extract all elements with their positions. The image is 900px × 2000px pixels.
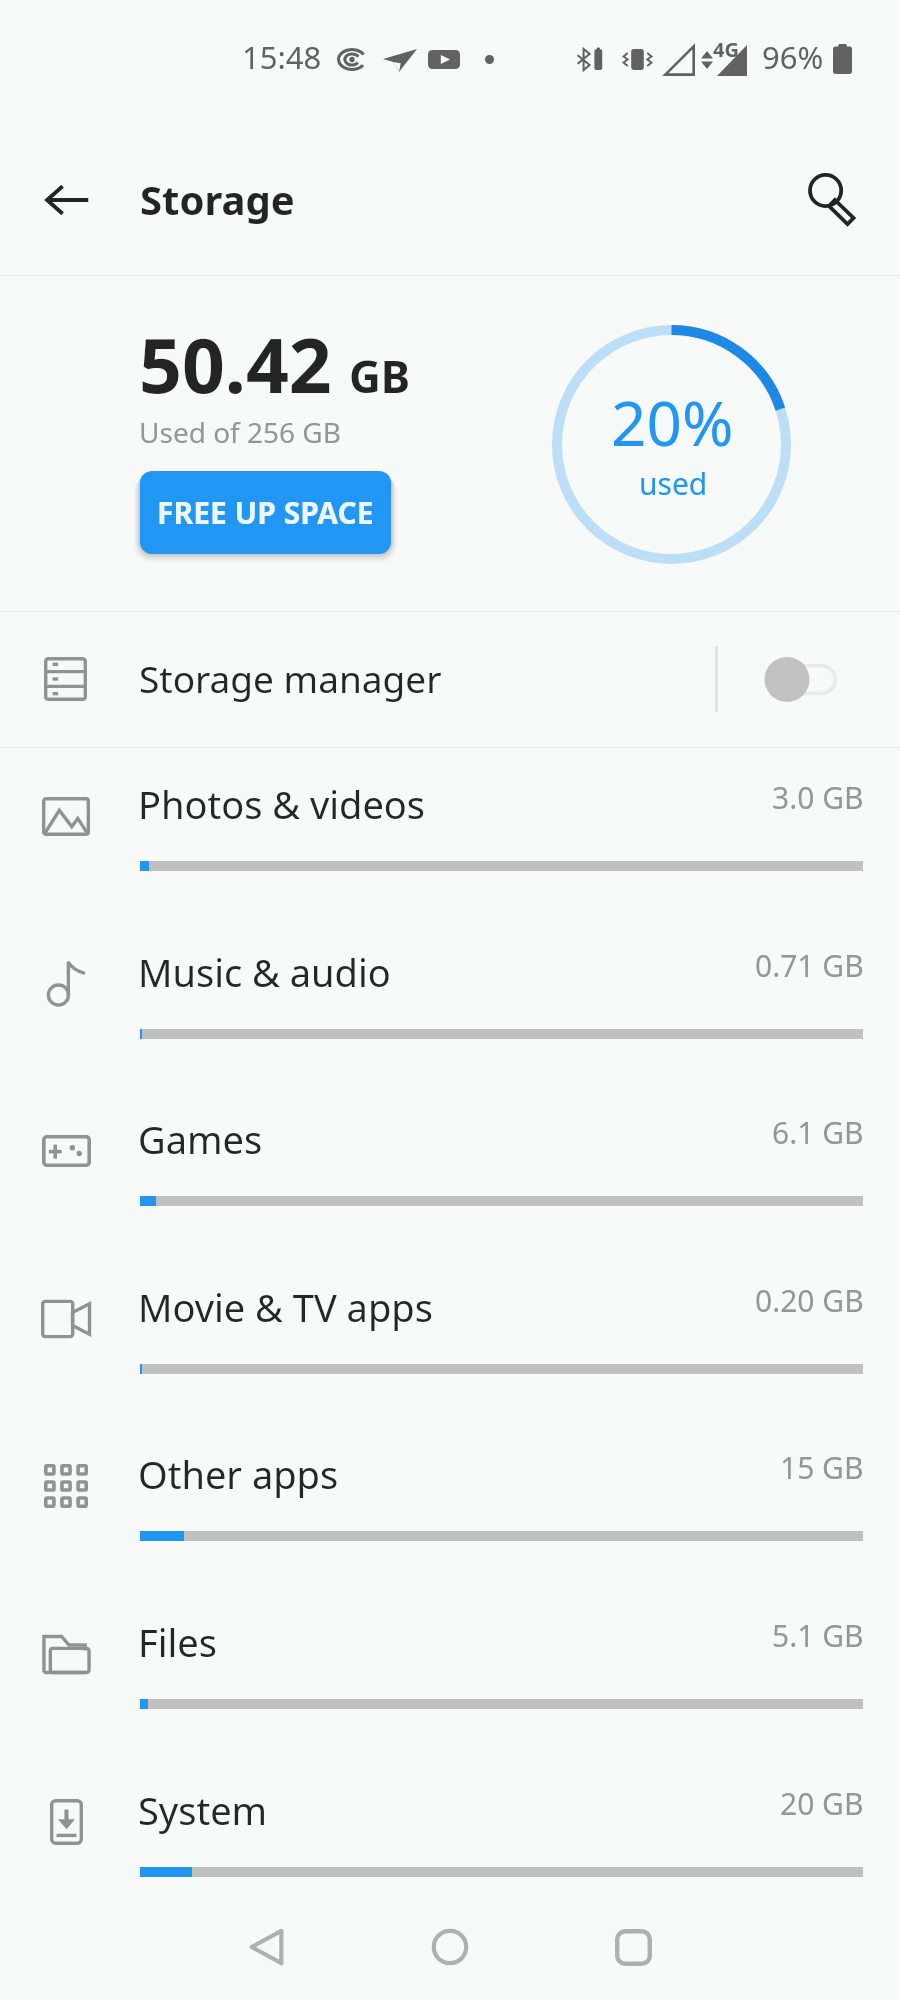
- staticText: System: [138, 1784, 268, 1836]
- button[interactable]: Storage manager: [0, 612, 900, 747]
- button[interactable]: Other apps: [0, 1430, 900, 1597]
- button[interactable]: Photos & videos: [0, 760, 900, 927]
- staticText: Files: [138, 1616, 217, 1668]
- staticText: FREE UP SPACE: [157, 492, 374, 533]
- staticText: Other apps: [138, 1448, 339, 1500]
- staticText: Music & audio: [138, 946, 391, 998]
- staticText: 0.71 GB: [755, 945, 864, 986]
- staticText: 20%: [611, 380, 734, 464]
- staticText: 6.1 GB: [772, 1112, 864, 1153]
- button[interactable]: Music & audio: [0, 928, 900, 1095]
- staticText: 3.0 GB: [772, 777, 864, 818]
- staticText: 15:48: [242, 36, 322, 78]
- button[interactable]: Navigate back: [216, 1897, 316, 1997]
- button[interactable]: Storage manager switch: [740, 640, 866, 736]
- staticText: Storage: [140, 172, 295, 226]
- button[interactable]: Recents: [583, 1897, 683, 1997]
- button[interactable]: Search: [782, 156, 870, 244]
- staticText: 20 GB: [780, 1783, 864, 1824]
- staticText: GB: [349, 346, 411, 406]
- button[interactable]: System: [0, 1766, 900, 1933]
- staticText: 15 GB: [780, 1447, 864, 1488]
- button[interactable]: Movie & TV apps: [0, 1263, 900, 1430]
- staticText: 5.1 GB: [772, 1615, 864, 1656]
- button[interactable]: Home: [400, 1897, 500, 1997]
- staticText: 4G: [713, 36, 739, 63]
- staticText: Photos & videos: [138, 778, 426, 830]
- button[interactable]: Back: [23, 156, 111, 244]
- staticText: Games: [138, 1113, 263, 1165]
- staticText: 0.20 GB: [755, 1280, 864, 1321]
- staticText: Movie & TV apps: [138, 1281, 433, 1333]
- staticText: 50.42: [139, 313, 332, 415]
- button[interactable]: Games: [0, 1095, 900, 1262]
- button[interactable]: Files: [0, 1598, 900, 1765]
- staticText: Storage manager: [139, 653, 442, 703]
- staticText: used: [639, 463, 708, 504]
- button[interactable]: FREE UP SPACE: [140, 471, 391, 554]
- staticText: 96%: [762, 36, 824, 78]
- staticText: Used of 256 GB: [139, 413, 341, 451]
